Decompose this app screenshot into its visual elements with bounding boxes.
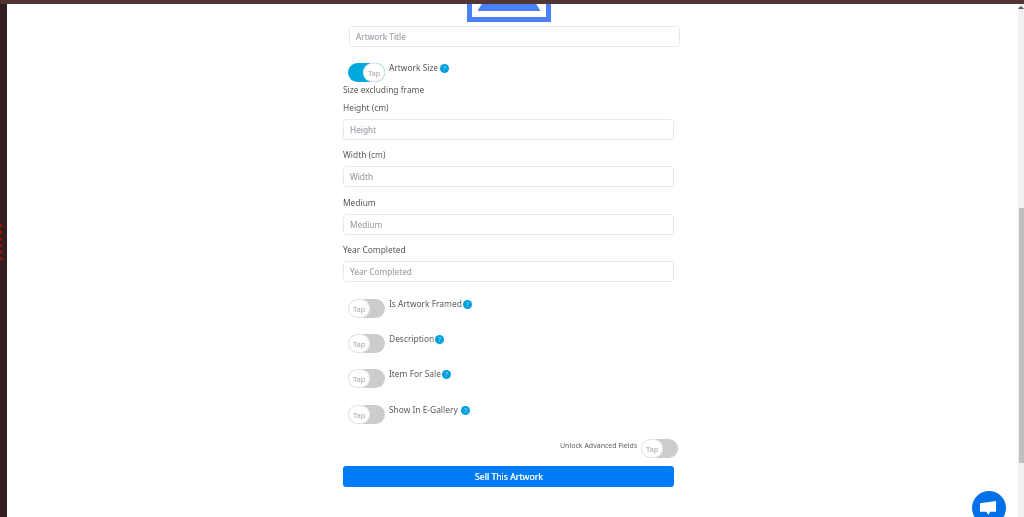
button[interactable]: Width — [343, 166, 674, 187]
button[interactable]: Description toggle — [348, 334, 385, 353]
button[interactable]: Artwork Title — [349, 26, 680, 47]
staticText: ? — [438, 335, 442, 344]
staticText: Tap — [646, 444, 659, 454]
staticText: Show In E-Gallery — [389, 404, 458, 415]
button[interactable]: Help about Show In E-Gallery — [461, 406, 470, 415]
staticText: Year Completed — [350, 266, 412, 277]
staticText: Tap — [353, 410, 366, 420]
button[interactable]: Help about Description — [435, 335, 444, 344]
staticText: Sell This Artwork — [475, 471, 543, 483]
staticText: Artwork Title — [356, 31, 406, 42]
staticText: Width (cm) — [343, 149, 386, 160]
staticText: Tap — [353, 339, 366, 349]
staticText: Item For Sale — [389, 368, 441, 379]
staticText: Height (cm) — [343, 102, 389, 113]
button[interactable]: Help about Artwork Size — [440, 64, 449, 73]
staticText: Tap — [353, 374, 366, 384]
button[interactable]: Is Artwork Framed toggle — [348, 299, 385, 318]
staticText: Unlock Advanced Fields — [560, 441, 638, 451]
staticText: Is Artwork Framed — [389, 298, 462, 309]
staticText: Size excluding frame — [343, 84, 425, 95]
staticText: Artwork Size — [389, 62, 439, 73]
staticText: Medium — [350, 219, 383, 230]
button[interactable]: Height — [343, 119, 674, 140]
button[interactable]: Show In E-Gallery toggle — [348, 405, 385, 424]
staticText: Description — [389, 333, 435, 344]
button[interactable]: Medium — [343, 214, 674, 235]
button[interactable]: Artwork Size toggle — [348, 63, 385, 82]
staticText: ? — [443, 64, 447, 73]
button[interactable]: Year Completed — [343, 261, 674, 282]
button[interactable]: Item For Sale toggle — [348, 369, 385, 388]
staticText: Tap — [353, 304, 366, 314]
button[interactable]: Sell This Artwork — [343, 466, 674, 487]
staticText: ? — [464, 406, 468, 415]
staticText: Medium — [343, 197, 376, 208]
button[interactable]: Scroll up — [1018, 3, 1024, 12]
button[interactable]: Unlock Advanced Fields toggle — [641, 439, 678, 458]
staticText: ? — [466, 300, 470, 309]
staticText: Width — [350, 171, 374, 182]
button[interactable]: Chat — [972, 491, 1006, 517]
staticText: Year Completed — [343, 244, 406, 255]
button[interactable]: Help about Is Artwork Framed — [463, 300, 472, 309]
button[interactable]: Help about Item For Sale — [442, 370, 451, 379]
staticText: ? — [445, 370, 449, 379]
staticText: Height — [350, 124, 377, 135]
staticText: Tap — [368, 68, 381, 78]
